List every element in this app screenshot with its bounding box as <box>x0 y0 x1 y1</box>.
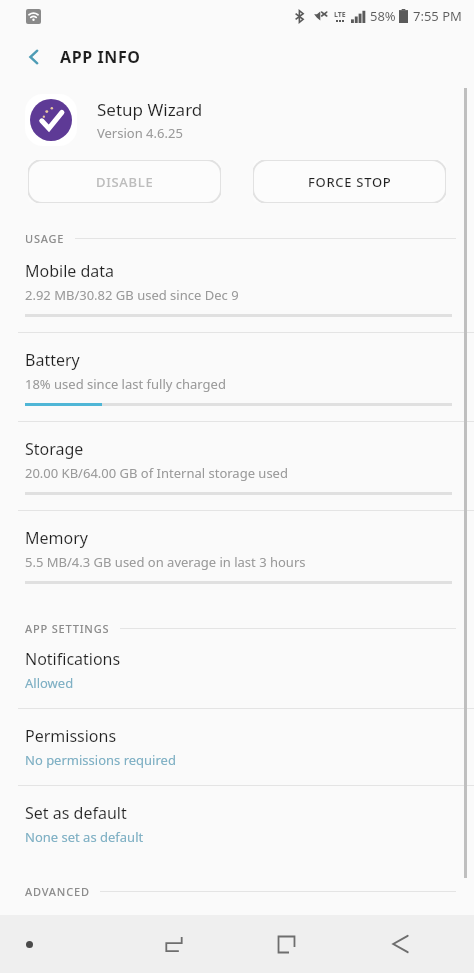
staticText: Memory <box>25 527 88 549</box>
staticText: Mobile data <box>25 260 115 282</box>
button[interactable]: Memory <box>0 527 474 599</box>
staticText: APP SETTINGS <box>25 621 110 636</box>
staticText: Setup Wizard <box>97 98 203 121</box>
button[interactable]: Storage <box>0 438 474 510</box>
button[interactable]: Mobile data <box>0 260 474 332</box>
button[interactable]: Notifications <box>0 648 474 708</box>
staticText: Allowed <box>25 674 74 692</box>
staticText: 20.00 KB/64.00 GB of Internal storage us… <box>25 464 288 482</box>
staticText: Set as default <box>25 802 127 824</box>
staticText: 18% used since last fully charged <box>25 375 226 393</box>
button[interactable]: DISABLE <box>28 160 221 203</box>
button[interactable]: Set as default <box>0 802 474 862</box>
staticText: 5.5 MB/4.3 GB used on average in last 3 … <box>25 553 306 571</box>
staticText: DISABLE <box>96 173 154 191</box>
staticText: APP INFO <box>60 46 141 68</box>
button[interactable]: Permissions <box>0 725 474 785</box>
staticText: ADVANCED <box>25 884 90 899</box>
staticText: No permissions required <box>25 751 176 769</box>
button[interactable]: Back <box>14 37 54 77</box>
button[interactable]: Recent apps <box>118 915 230 973</box>
button[interactable]: Indicator <box>0 915 118 973</box>
staticText: Permissions <box>25 725 117 747</box>
button[interactable]: Setup Wizard <box>25 94 474 146</box>
staticText: FORCE STOP <box>308 173 392 191</box>
staticText: 2.92 MB/30.82 GB used since Dec 9 <box>25 286 239 304</box>
button[interactable]: Back <box>343 915 456 973</box>
button[interactable]: FORCE STOP <box>253 160 446 203</box>
staticText: Notifications <box>25 648 121 670</box>
staticText: 58% <box>370 7 396 25</box>
staticText: 7:55 PM <box>413 7 462 25</box>
staticText: Storage <box>25 438 84 460</box>
button[interactable]: Battery <box>0 349 474 421</box>
staticText: Battery <box>25 349 80 371</box>
staticText: LTE <box>334 10 346 20</box>
staticText: USAGE <box>25 231 65 246</box>
staticText: None set as default <box>25 828 144 846</box>
staticText: Version 4.6.25 <box>97 124 183 142</box>
button[interactable]: Home <box>230 915 343 973</box>
